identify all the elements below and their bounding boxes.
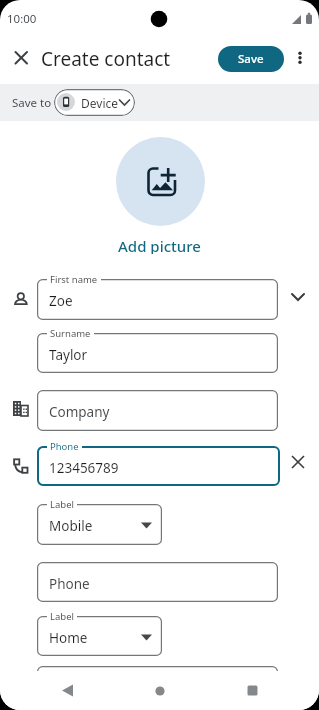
button[interactable]: Zoe bbox=[37, 279, 278, 320]
staticText: Create contact bbox=[41, 46, 171, 72]
button[interactable] bbox=[213, 671, 319, 710]
staticText: 10:00 bbox=[7, 11, 37, 27]
staticText: 123456789 bbox=[49, 459, 119, 477]
button[interactable] bbox=[292, 46, 308, 72]
staticText: Phone bbox=[49, 575, 90, 593]
staticText: Zoe bbox=[49, 292, 73, 310]
staticText: Save bbox=[238, 51, 264, 67]
staticText: Mobile bbox=[49, 517, 93, 535]
button[interactable]: Home bbox=[37, 616, 162, 656]
staticText: Home bbox=[49, 629, 88, 647]
button[interactable]: 123456789 bbox=[37, 446, 280, 486]
button[interactable]: Mobile bbox=[37, 504, 162, 545]
button[interactable] bbox=[0, 671, 107, 710]
button[interactable]: Phone bbox=[37, 562, 278, 602]
staticText: First name bbox=[50, 273, 98, 286]
button[interactable]: Save bbox=[218, 46, 284, 72]
staticText: Phone bbox=[50, 440, 79, 453]
staticText: Label bbox=[50, 498, 74, 511]
button[interactable]: Add picture bbox=[0, 236, 319, 254]
button[interactable] bbox=[8, 44, 36, 72]
button[interactable] bbox=[107, 671, 213, 710]
staticText: Label bbox=[50, 610, 74, 623]
staticText: Surname bbox=[50, 327, 91, 340]
button[interactable] bbox=[288, 452, 308, 472]
button[interactable]: Taylor bbox=[37, 333, 278, 373]
staticText: Company bbox=[49, 403, 110, 421]
staticText: Taylor bbox=[49, 346, 88, 364]
staticText: Add picture bbox=[118, 236, 201, 254]
staticText: Save to bbox=[12, 95, 52, 111]
button[interactable]: Device bbox=[54, 89, 135, 116]
button[interactable] bbox=[116, 137, 205, 226]
button[interactable]: Company bbox=[37, 390, 278, 431]
staticText: Device bbox=[81, 95, 119, 111]
